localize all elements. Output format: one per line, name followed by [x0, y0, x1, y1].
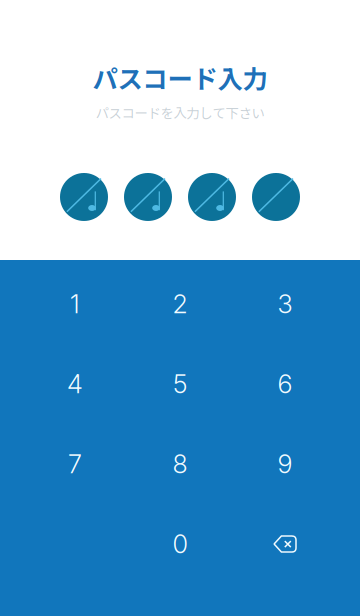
- button[interactable]: 6: [232, 344, 337, 424]
- button[interactable]: 8: [127, 424, 232, 504]
- staticText: 9: [277, 449, 292, 479]
- staticText: 8: [172, 449, 187, 479]
- button[interactable]: 3: [232, 264, 337, 344]
- staticText: 0: [172, 529, 187, 559]
- staticText: 5: [173, 369, 187, 399]
- staticText: 2: [172, 289, 187, 319]
- button[interactable]: Delete: [232, 504, 337, 584]
- button[interactable]: 5: [127, 344, 232, 424]
- staticText: 3: [277, 289, 292, 319]
- button[interactable]: 9: [232, 424, 337, 504]
- button[interactable]: 1: [22, 264, 127, 344]
- staticText: パスコード入力: [92, 59, 267, 96]
- staticText: 4: [67, 369, 83, 399]
- button[interactable]: 2: [127, 264, 232, 344]
- staticText: 1: [70, 289, 80, 319]
- staticText: パスコードを入力して下さい: [95, 103, 264, 122]
- button[interactable]: 7: [22, 424, 127, 504]
- staticText: 7: [68, 449, 82, 479]
- staticText: 6: [277, 369, 292, 399]
- button[interactable]: 0: [127, 504, 232, 584]
- button[interactable]: 4: [22, 344, 127, 424]
